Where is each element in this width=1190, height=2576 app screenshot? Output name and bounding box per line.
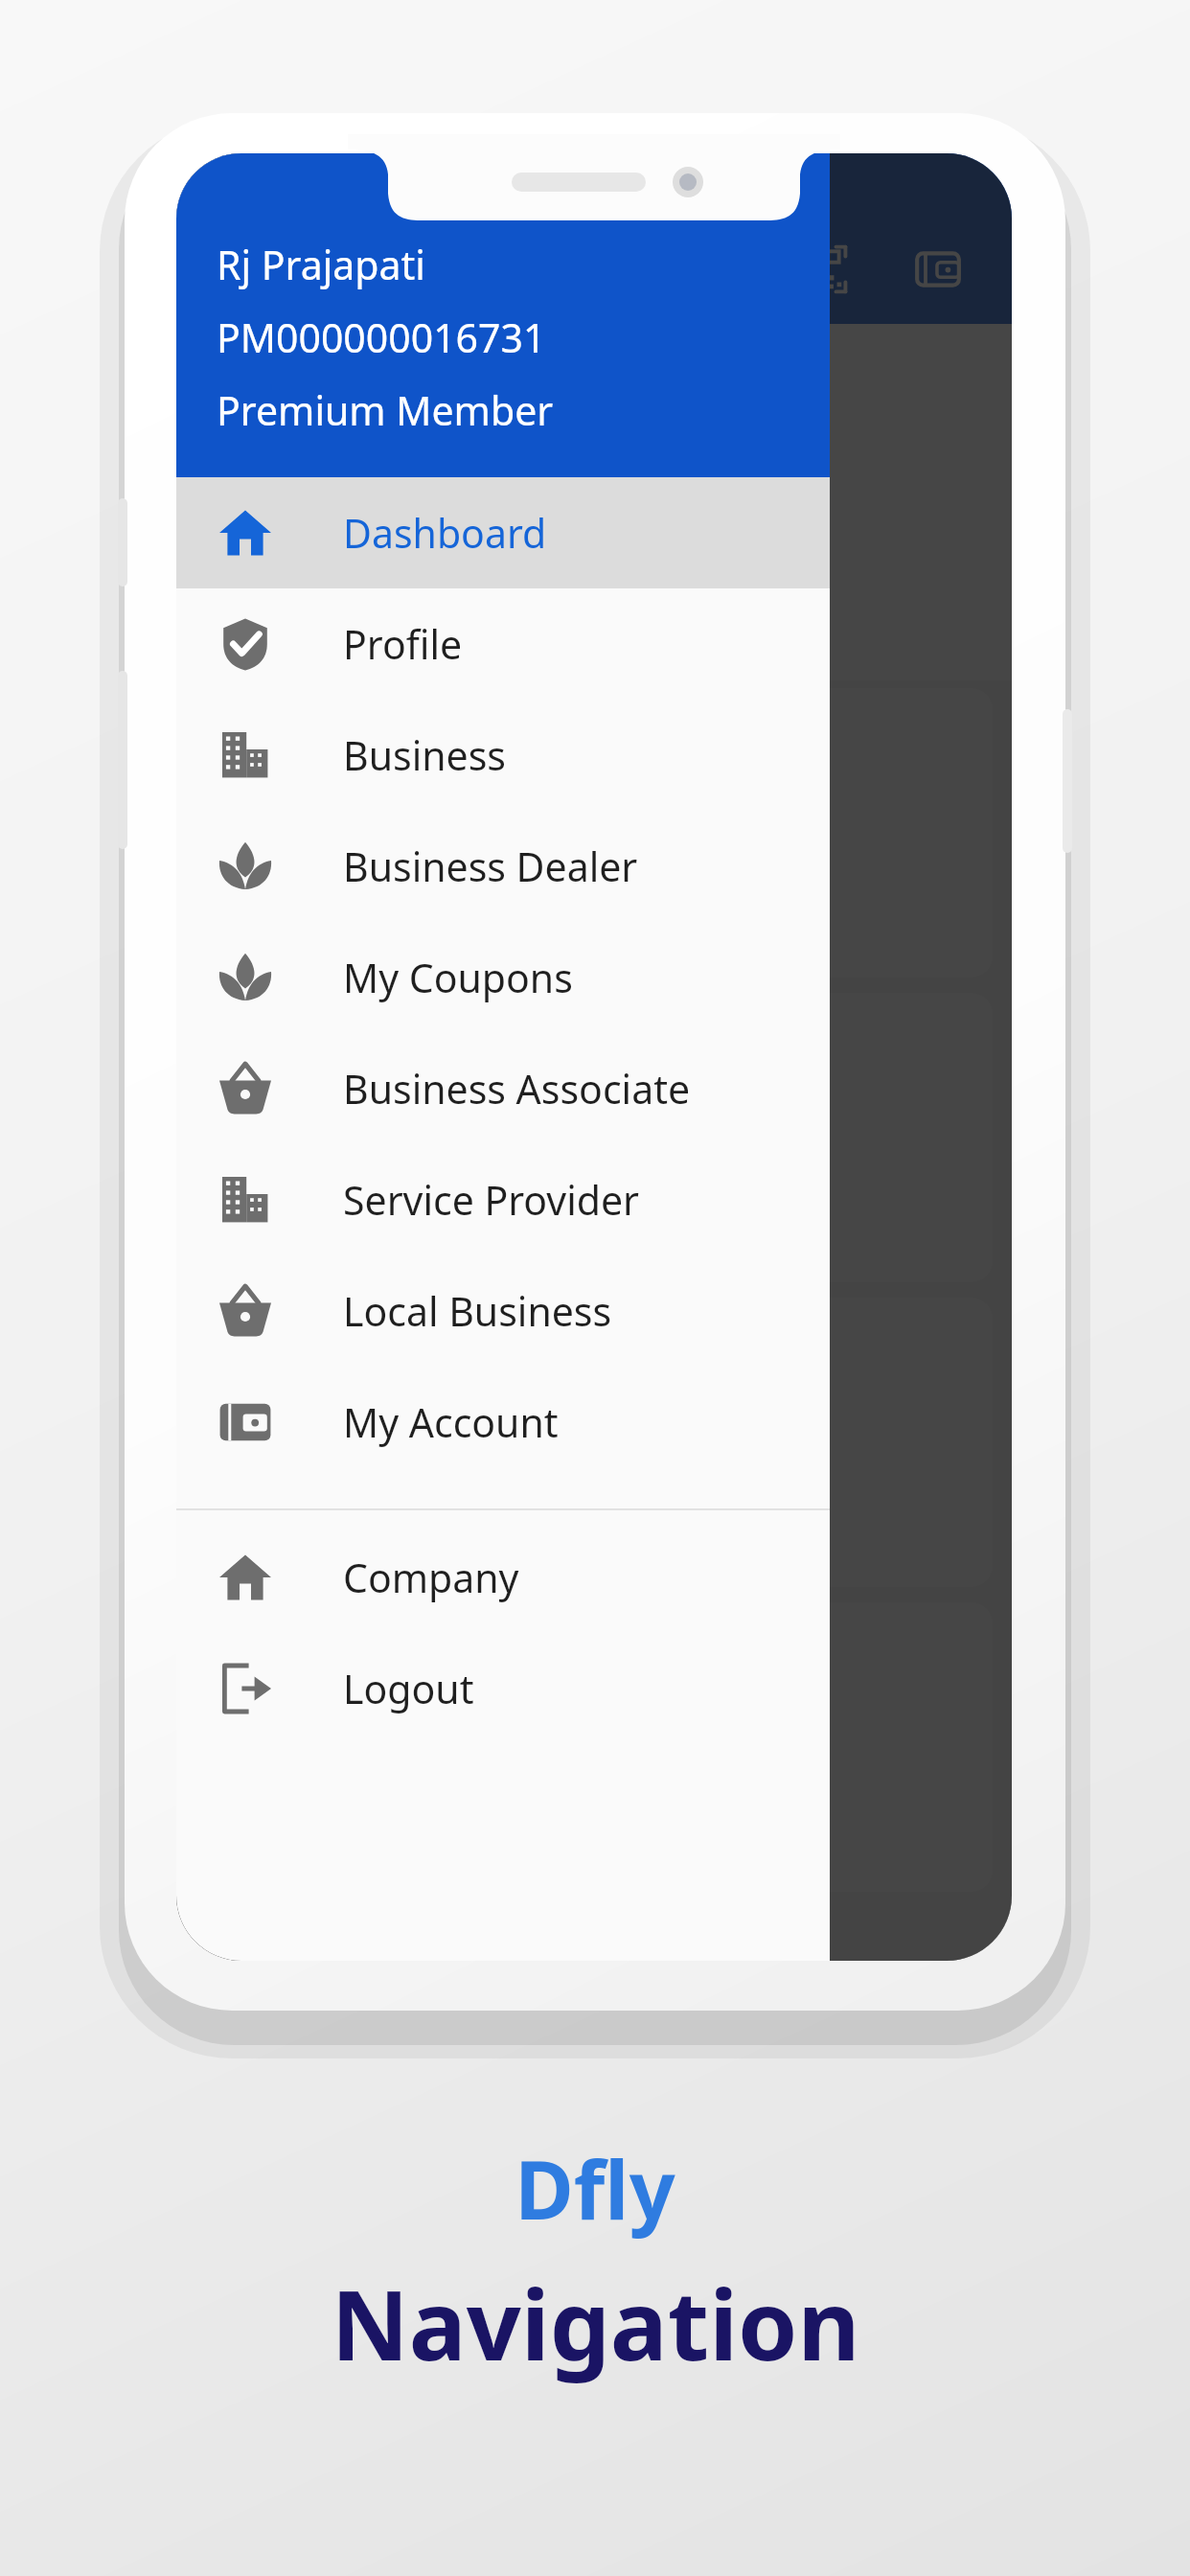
button[interactable]: Scan QR code — [791, 238, 855, 301]
staticText: My Coupons — [343, 951, 573, 1004]
button[interactable]: Business — [176, 700, 830, 811]
staticText: Service Provider — [343, 1173, 640, 1227]
staticText: Local Business — [343, 1284, 612, 1338]
staticText: Rj Prajapati — [217, 238, 425, 291]
button[interactable]: Business Dealer — [176, 811, 830, 922]
staticText: Payment — [511, 1540, 678, 1587]
button[interactable]: Service Provider — [176, 1144, 830, 1255]
button[interactable]: Online — [195, 688, 993, 977]
button[interactable]: Dashboard — [176, 477, 830, 588]
staticText: Business Associate — [343, 1062, 691, 1115]
staticText: Profile — [343, 617, 463, 671]
button[interactable]: Profile — [176, 588, 830, 700]
staticText: Dth — [560, 1181, 629, 1235]
button[interactable]: Gas Bill — [195, 1298, 993, 1587]
button[interactable]: Business Associate — [176, 1033, 830, 1144]
button[interactable]: My Coupons — [176, 922, 830, 1033]
staticText: Dfly — [515, 2133, 675, 2242]
staticText: Dashboard — [343, 506, 547, 560]
button[interactable]: Wallet — [906, 238, 970, 301]
staticText: Business Dealer — [343, 839, 638, 893]
button[interactable]: My Account — [176, 1367, 830, 1478]
staticText: Online — [532, 876, 657, 931]
staticText: Booking — [515, 931, 673, 977]
staticText: Business — [343, 728, 506, 782]
staticText: Company — [343, 1551, 519, 1604]
staticText: Navigation — [331, 2258, 860, 2388]
button[interactable]: Local Business — [176, 1255, 830, 1367]
staticText: Gas Bill — [525, 1485, 664, 1540]
button[interactable]: Water Bill — [195, 1602, 993, 1892]
button[interactable]: Company — [176, 1522, 830, 1633]
staticText: My Account — [343, 1395, 559, 1449]
button[interactable]: Logout — [176, 1633, 830, 1744]
staticText: Premium Member — [217, 383, 554, 437]
staticText: Logout — [343, 1662, 474, 1715]
button[interactable]: Dth — [195, 993, 993, 1282]
staticText: PM000000016731 — [217, 310, 546, 364]
